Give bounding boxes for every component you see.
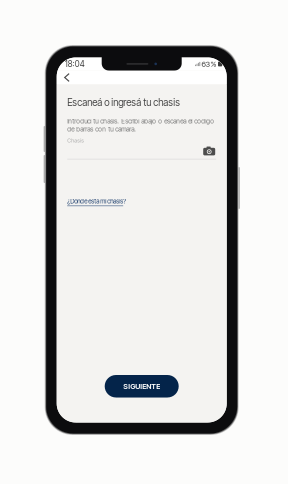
staticText: SIGUIENTE [123, 382, 160, 391]
staticText: ¿Dónde está mi chasis? [67, 197, 126, 205]
button[interactable]: SIGUIENTE [105, 375, 179, 397]
staticText: Chasis [67, 137, 84, 144]
staticText: Escaneá o ingresá tu chasis [67, 96, 180, 108]
staticText: 18:04 [65, 59, 85, 69]
button[interactable]: Escanear con la cámara [202, 145, 216, 157]
button[interactable]: ¿Dónde está mi chasis? [67, 197, 126, 206]
staticText: 63% [201, 59, 216, 69]
staticText: Introducí tu chasis. Escribí abajo o esc… [67, 117, 214, 133]
button[interactable]: Volver [57, 70, 76, 84]
